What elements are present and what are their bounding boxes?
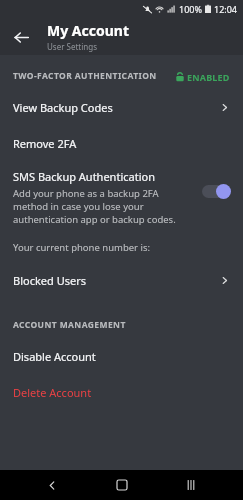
button[interactable]: Recent apps xyxy=(174,470,208,500)
staticText: View Backup Codes xyxy=(13,100,113,115)
staticText: Add your phone as a backup 2FA method in… xyxy=(13,187,183,226)
button[interactable]: Delete Account xyxy=(0,374,243,410)
button[interactable]: Remove 2FA xyxy=(0,125,243,161)
button[interactable]: SMS Backup Authentication toggle xyxy=(202,183,232,199)
button[interactable]: Blocked Users xyxy=(0,262,243,298)
staticText: Delete Account xyxy=(13,385,92,400)
staticText: SMS Backup Authentication xyxy=(13,169,155,184)
staticText: TWO-FACTOR AUTHENTICATION xyxy=(13,70,157,82)
staticText: ACCOUNT MANAGEMENT xyxy=(13,319,126,331)
staticText: Your current phone number is: xyxy=(13,241,151,254)
staticText: User Settings xyxy=(47,41,98,52)
button[interactable]: Disable Account xyxy=(0,338,243,374)
button[interactable]: Home xyxy=(105,470,139,500)
staticText: Remove 2FA xyxy=(13,136,77,151)
staticText: My Account xyxy=(47,21,129,40)
staticText: Disable Account xyxy=(13,349,96,364)
staticText: 12:04 xyxy=(214,3,238,15)
staticText: 100% xyxy=(179,3,202,15)
staticText: ENABLED xyxy=(187,71,230,83)
button[interactable]: Back xyxy=(35,470,69,500)
staticText: Blocked Users xyxy=(13,273,86,288)
button[interactable]: Back xyxy=(8,24,34,50)
button[interactable]: View Backup Codes xyxy=(0,89,243,125)
button[interactable]: SMS Backup Authentication xyxy=(0,161,243,232)
